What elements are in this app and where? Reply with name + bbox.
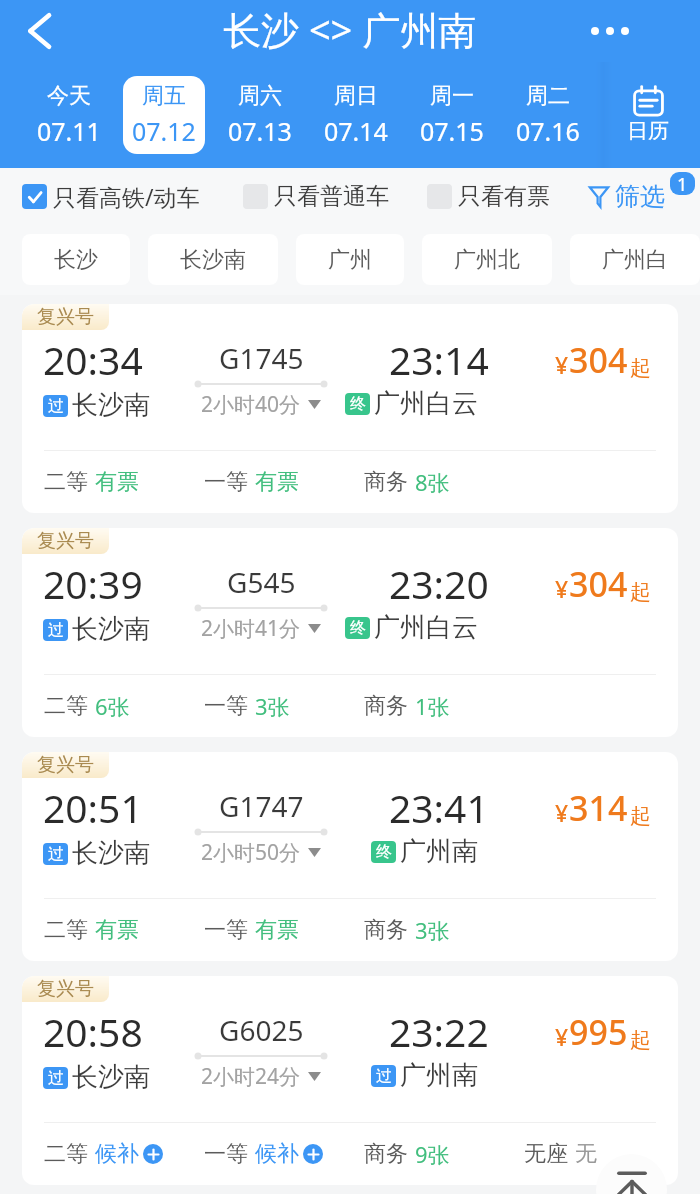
staticText: 3张 <box>415 915 450 945</box>
button[interactable]: Back to top <box>596 1154 667 1194</box>
button[interactable]: 广州北 <box>422 234 552 285</box>
staticText: 筛选 <box>615 181 665 212</box>
staticText: 周六 <box>238 82 282 110</box>
staticText: 终 <box>350 394 366 414</box>
staticText: G1745 <box>219 339 304 377</box>
staticText: 一等 <box>204 916 248 944</box>
button[interactable]: 筛选 <box>589 181 691 212</box>
button[interactable]: 只看普通车 <box>243 182 389 211</box>
button[interactable]: 复兴号 <box>22 752 678 961</box>
staticText: 有票 <box>255 916 299 944</box>
staticText: 起 <box>630 579 651 605</box>
button[interactable]: 复兴号 <box>22 304 678 513</box>
staticText: 2小时50分 <box>201 838 301 867</box>
staticText: 日历 <box>627 118 669 144</box>
button[interactable]: 周五 <box>123 76 205 154</box>
staticText: 广州北 <box>454 246 520 274</box>
staticText: 过 <box>48 396 64 416</box>
staticText: G1747 <box>219 787 304 825</box>
staticText: 6张 <box>95 691 130 721</box>
staticText: 复兴号 <box>37 529 94 553</box>
staticText: 商务 <box>364 916 408 944</box>
staticText: ¥ <box>555 573 569 604</box>
button[interactable]: 周六 <box>219 76 301 154</box>
staticText: 过 <box>48 844 64 864</box>
staticText: 07.14 <box>324 114 388 148</box>
staticText: 有票 <box>95 468 139 496</box>
button[interactable]: Back <box>13 5 65 57</box>
staticText: 广州白云 <box>602 246 668 274</box>
staticText: 07.13 <box>228 114 292 148</box>
staticText: 314 <box>569 785 628 831</box>
button[interactable]: 广州 <box>296 234 404 285</box>
staticText: 二等 <box>44 1140 88 1168</box>
button[interactable]: 只看高铁/动车 <box>22 181 200 212</box>
staticText: 周日 <box>334 82 378 110</box>
staticText: 复兴号 <box>37 305 94 329</box>
staticText: 长沙南 <box>72 389 150 422</box>
staticText: 995 <box>569 1009 628 1055</box>
staticText: 二等 <box>44 692 88 720</box>
staticText: 周五 <box>142 82 186 110</box>
staticText: 一等 <box>204 692 248 720</box>
staticText: ¥ <box>555 797 569 828</box>
staticText: 只看有票 <box>458 182 550 211</box>
button[interactable]: 周日 <box>315 76 397 154</box>
staticText: 20:39 <box>43 557 143 610</box>
staticText: 商务 <box>364 692 408 720</box>
staticText: 有票 <box>95 916 139 944</box>
staticText: 起 <box>630 1027 651 1053</box>
staticText: 周二 <box>526 82 570 110</box>
staticText: 23:22 <box>389 1005 489 1058</box>
staticText: 周一 <box>430 82 474 110</box>
staticText: ¥ <box>555 1021 569 1052</box>
staticText: 长沙 <box>54 246 98 274</box>
staticText: 起 <box>630 803 651 829</box>
staticText: 无座 <box>524 1140 568 1168</box>
staticText: 商务 <box>364 468 408 496</box>
staticText: 304 <box>569 337 628 383</box>
staticText: 23:14 <box>389 333 489 386</box>
staticText: 07.16 <box>516 114 580 148</box>
staticText: 广州白云 <box>374 611 478 644</box>
staticText: 候补 <box>255 1140 299 1168</box>
staticText: 一等 <box>204 1140 248 1168</box>
staticText: 9张 <box>415 1139 450 1169</box>
staticText: 起 <box>630 355 651 381</box>
staticText: 一等 <box>204 468 248 496</box>
staticText: 过 <box>376 1066 392 1086</box>
button[interactable]: Calendar <box>596 62 700 168</box>
button[interactable]: More options <box>584 5 636 57</box>
staticText: 长沙南 <box>72 1061 150 1094</box>
button[interactable]: 长沙 <box>22 234 130 285</box>
staticText: 20:58 <box>43 1005 143 1058</box>
button[interactable]: 复兴号 <box>22 528 678 737</box>
staticText: G6025 <box>219 1011 304 1049</box>
staticText: 长沙南 <box>72 613 150 646</box>
staticText: 商务 <box>364 1140 408 1168</box>
button[interactable]: 复兴号 <box>22 976 678 1185</box>
button[interactable]: 只看有票 <box>427 182 550 211</box>
staticText: 终 <box>350 618 366 638</box>
button[interactable]: 今天 <box>28 76 109 154</box>
staticText: 长沙 <> 广州南 <box>223 3 477 55</box>
staticText: 无 <box>575 1140 597 1168</box>
staticText: 二等 <box>44 468 88 496</box>
staticText: 只看普通车 <box>274 182 389 211</box>
staticText: 过 <box>48 620 64 640</box>
staticText: 1张 <box>415 691 450 721</box>
button[interactable]: 周一 <box>411 76 493 154</box>
button[interactable]: 周二 <box>507 76 589 154</box>
staticText: 有票 <box>255 468 299 496</box>
staticText: 长沙南 <box>180 246 246 274</box>
staticText: 今天 <box>47 82 91 110</box>
staticText: 复兴号 <box>37 977 94 1001</box>
staticText: 广州南 <box>400 835 478 868</box>
staticText: 2小时40分 <box>201 390 301 419</box>
staticText: 只看高铁/动车 <box>53 181 200 212</box>
button[interactable]: 长沙南 <box>148 234 278 285</box>
staticText: 候补 <box>95 1140 139 1168</box>
staticText: 23:20 <box>389 557 489 610</box>
staticText: 广州白云 <box>374 387 478 420</box>
button[interactable]: 广州白云 <box>570 234 700 285</box>
